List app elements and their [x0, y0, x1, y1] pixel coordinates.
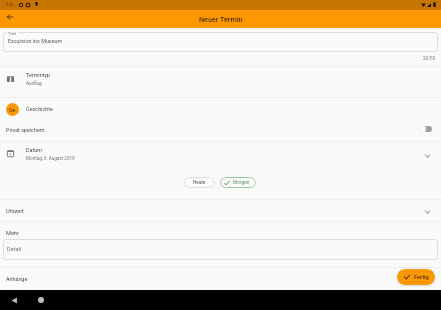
button[interactable]: Termintyp [0, 67, 441, 97]
other: Home [38, 297, 44, 303]
button[interactable]: Back [3, 10, 17, 24]
button[interactable]: Datum [0, 142, 441, 171]
staticText: Ausflug [26, 81, 42, 86]
button[interactable]: Detail [3, 239, 438, 260]
staticText: Fertig [414, 274, 429, 281]
staticText: Morgen [233, 180, 250, 186]
staticText: Excursion ins Museum [8, 38, 63, 44]
button[interactable]: Uhrzeit [0, 200, 441, 221]
button[interactable]: Privat speichern [0, 120, 441, 141]
staticText: Ge [9, 107, 16, 113]
staticText: Montag, 5. August 2019 [26, 156, 75, 161]
staticText: Detail [7, 246, 22, 253]
staticText: Datum [26, 147, 42, 153]
staticText: Privat speichern [6, 127, 45, 133]
staticText: Neuer Termin [199, 15, 243, 23]
staticText: Uhrzeit [6, 208, 24, 215]
staticText: 20/50 [423, 56, 436, 61]
staticText: Heute [193, 180, 206, 185]
button[interactable]: Heute [184, 177, 215, 188]
button[interactable]: Excursion ins Museum [3, 32, 438, 52]
other: Back [11, 297, 18, 304]
staticText: 9:30 [6, 3, 13, 7]
staticText: Titel [8, 31, 17, 36]
staticText: Geschichte [26, 106, 53, 112]
button[interactable]: Fertig [397, 269, 435, 285]
staticText: Anhänge [6, 276, 28, 282]
button[interactable]: Morgen [220, 177, 256, 188]
staticText: Termintyp [26, 72, 50, 78]
staticText: Mehr [6, 230, 19, 237]
button[interactable]: Ge [0, 98, 441, 120]
